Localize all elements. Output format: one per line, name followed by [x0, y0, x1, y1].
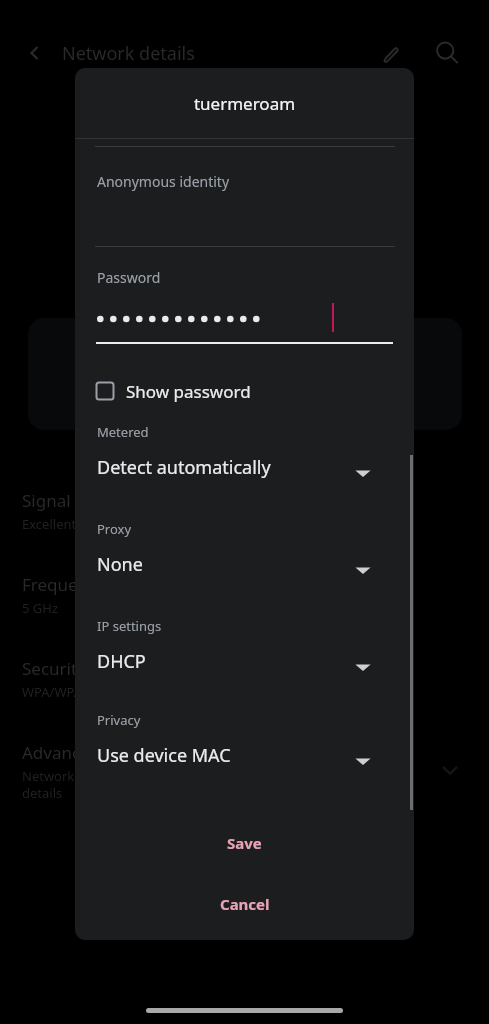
staticText: IP settings	[97, 617, 162, 635]
staticText: Frequency	[22, 573, 105, 596]
button[interactable]: Back	[18, 38, 48, 68]
staticText: 5 GHz	[22, 599, 59, 617]
button[interactable]: Search	[432, 38, 462, 68]
staticText: Excellent	[22, 515, 77, 533]
button[interactable]: Save	[75, 820, 414, 866]
staticText: Signal	[22, 489, 71, 512]
staticText: Network details	[62, 41, 195, 66]
staticText: Network details	[22, 767, 75, 802]
button[interactable]: Proxy	[75, 520, 414, 612]
button[interactable]: Edit	[376, 38, 406, 68]
staticText: Proxy	[97, 520, 132, 538]
staticText: Show password	[126, 380, 251, 403]
staticText: Metered	[97, 423, 149, 441]
button[interactable]: Privacy	[75, 711, 414, 803]
button[interactable]: Metered	[75, 423, 414, 515]
button[interactable]: Show password	[95, 371, 335, 411]
staticText: None	[97, 552, 143, 577]
staticText: tuermeroam	[75, 92, 414, 115]
staticText: Detect automatically	[97, 455, 271, 480]
staticText: Cancel	[220, 894, 270, 914]
staticText: DHCP	[97, 649, 146, 674]
button[interactable]: Expand	[434, 754, 466, 786]
button[interactable]: IP settings	[75, 617, 414, 709]
staticText: Anonymous identity	[97, 172, 230, 191]
button[interactable]: Cancel	[75, 881, 414, 927]
staticText: Use device MAC	[97, 743, 231, 768]
staticText: Advanced	[22, 741, 101, 764]
staticText: Security	[22, 657, 86, 680]
staticText: Privacy	[97, 711, 141, 729]
staticText: WPA/WPA2	[22, 683, 90, 701]
staticText: Save	[227, 833, 262, 853]
staticText: Password	[97, 268, 161, 287]
